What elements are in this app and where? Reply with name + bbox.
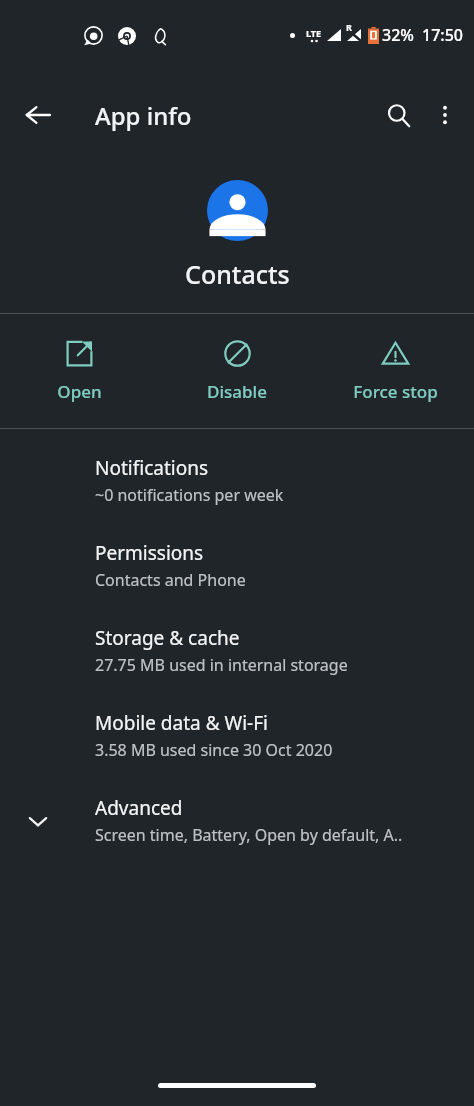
button[interactable]: Notifications [0,438,474,523]
staticText: Advanced [95,795,183,821]
staticText: ~0 notifications per week [95,484,284,506]
staticText: 32% [382,24,414,46]
staticText: App info [95,99,192,132]
staticText: LTE [306,27,322,39]
staticText: Contacts [185,257,290,291]
staticText: 27.75 MB used in internal storage [95,654,348,676]
button[interactable]: Permissions [0,523,474,608]
staticText: 3.58 MB used since 30 Oct 2020 [95,739,333,761]
button[interactable]: Storage & cache [0,608,474,693]
button[interactable]: Force stop [316,314,474,428]
staticText: Disable [207,380,267,403]
button[interactable]: Mobile data & Wi-Fi [0,693,474,778]
staticText: Permissions [95,540,204,566]
staticText: Notifications [95,455,209,481]
staticText: Storage & cache [95,625,240,651]
staticText: Mobile data & Wi-Fi [95,710,268,736]
button[interactable]: Advanced [0,778,474,863]
button[interactable]: Back [14,91,62,139]
button[interactable]: Disable [158,314,316,428]
staticText: R [346,21,352,33]
staticText: 17:50 [422,24,463,46]
button[interactable]: Search [374,91,422,139]
staticText: Open [57,380,102,403]
staticText: Force stop [353,380,438,403]
staticText: Screen time, Battery, Open by default, A… [95,824,403,846]
button[interactable]: More options [422,92,468,138]
staticText: Contacts and Phone [95,569,246,591]
button[interactable]: Open [0,314,158,428]
